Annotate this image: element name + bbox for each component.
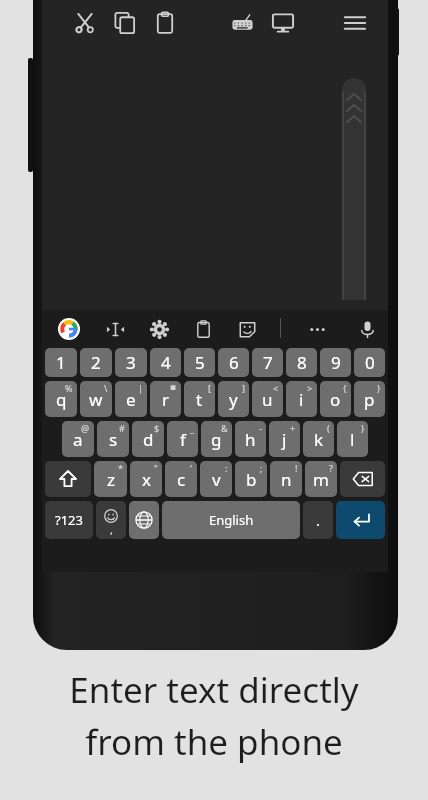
button[interactable]: 8 [286,348,317,377]
button[interactable]: Google [58,318,80,340]
staticText: | [138,382,143,394]
button[interactable]: English [162,501,300,539]
staticText: g [211,428,222,451]
button[interactable]: e [115,381,147,417]
button[interactable]: l [337,421,368,457]
button[interactable]: Shift [45,461,91,497]
staticText: i [299,388,304,411]
button[interactable]: t [184,381,215,417]
staticText: z [107,468,115,491]
button[interactable]: Cut [70,8,100,38]
button[interactable]: z [94,461,127,497]
button[interactable]: d [132,421,164,457]
staticText: l [350,428,355,451]
staticText: * [118,462,123,474]
staticText: j [282,428,287,451]
button[interactable]: h [235,421,266,457]
staticText: t [196,388,203,411]
button[interactable]: p [354,381,385,417]
button[interactable]: x [130,461,162,497]
button[interactable]: f [167,421,198,457]
button[interactable]: r [150,381,181,417]
staticText: _ [190,422,194,434]
button[interactable]: Emoji [96,501,126,539]
button[interactable]: s [97,421,129,457]
button[interactable]: j [269,421,300,457]
staticText: y [229,388,238,411]
button[interactable]: Clipboard [190,316,216,342]
staticText: # [119,422,125,434]
staticText: 2 [91,351,101,374]
staticText: { [343,382,347,394]
staticText: ; [260,462,263,474]
button[interactable]: 5 [184,348,215,377]
button[interactable]: Menu [340,8,370,38]
button[interactable]: o [320,381,351,417]
button[interactable]: . [303,501,333,539]
button[interactable]: Display [268,8,298,38]
button[interactable]: 1 [45,348,77,377]
button[interactable]: m [305,461,337,497]
button[interactable]: Voice input [354,316,380,342]
button[interactable]: 0 [354,348,385,377]
button[interactable]: g [201,421,232,457]
staticText: 7 [263,351,273,374]
staticText: % [65,382,73,394]
button[interactable]: Keyboard [228,8,258,38]
staticText: ?123 [55,511,83,529]
staticText: q [56,388,67,411]
staticText: \ [104,382,108,394]
staticText: x [142,468,151,491]
button[interactable]: w [80,381,112,417]
button[interactable]: Stickers [234,316,260,342]
button[interactable]: Move cursor [102,316,128,342]
button[interactable]: y [218,381,249,417]
button[interactable]: Settings [146,316,172,342]
button[interactable]: 3 [115,348,147,377]
staticText: . [316,510,321,530]
staticText: d [143,428,154,451]
button[interactable]: i [286,381,317,417]
button[interactable]: c [165,461,197,497]
button[interactable]: b [235,461,267,497]
button[interactable]: u [252,381,283,417]
button[interactable]: Change language [129,501,159,539]
button[interactable]: More options [304,316,330,342]
staticText: 9 [331,351,341,374]
button[interactable]: Paste [150,8,180,38]
button[interactable]: v [200,461,232,497]
staticText: @ [81,422,90,434]
staticText: 3 [126,351,136,374]
staticText: Enter text directly [69,666,359,714]
button[interactable]: 2 [80,348,112,377]
staticText: $ [154,422,160,434]
staticText: English [209,511,254,529]
staticText: 4 [161,351,171,374]
button[interactable]: Scroll [342,78,366,300]
button[interactable]: a [62,421,94,457]
staticText: 8 [297,351,307,374]
button[interactable]: Enter [336,501,385,539]
button[interactable]: k [303,421,334,457]
staticText: ( [327,422,330,434]
button[interactable]: n [270,461,302,497]
staticText: from the phone [85,718,343,766]
staticText: > [307,382,313,394]
button[interactable]: Backspace [340,461,385,497]
button[interactable]: 4 [150,348,181,377]
staticText: n [281,468,292,491]
staticText: u [262,388,273,411]
button[interactable]: Copy [110,8,140,38]
button[interactable]: 6 [218,348,249,377]
staticText: p [364,388,375,411]
button[interactable]: 9 [320,348,351,377]
staticText: 1 [56,351,66,374]
staticText: r [162,388,170,411]
button[interactable]: q [45,381,77,417]
staticText: < [273,382,279,394]
staticText: " [154,462,158,474]
button[interactable]: ?123 [45,501,93,539]
staticText: ] [242,382,245,394]
staticText: ) [361,422,364,434]
button[interactable]: 7 [252,348,283,377]
